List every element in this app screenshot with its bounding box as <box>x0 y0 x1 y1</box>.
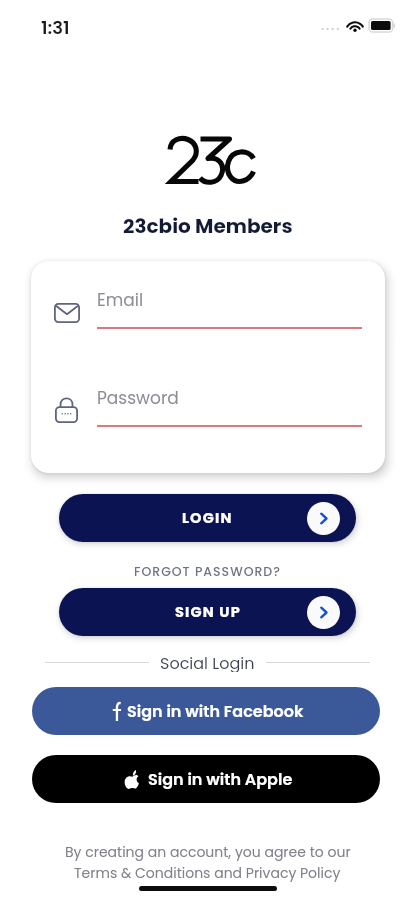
button[interactable]: Sign in with Apple <box>32 755 380 803</box>
staticText: Email <box>97 288 144 312</box>
button[interactable]: Terms & Conditions and Privacy Policy <box>74 863 341 883</box>
button[interactable]: FORGOT PASSWORD? <box>128 560 287 583</box>
staticText: SIGN UP <box>175 602 241 622</box>
staticText: Sign in with Apple <box>148 768 293 790</box>
staticText: By creating an account, you agree to our <box>65 842 351 862</box>
staticText: Sign in with Facebook <box>127 700 304 722</box>
button[interactable]: SIGN UP <box>59 588 356 636</box>
button[interactable]: Password <box>31 389 385 435</box>
button[interactable]: Email <box>31 291 385 337</box>
staticText: FORGOT PASSWORD? <box>134 563 281 580</box>
button[interactable]: Sign in with Facebook <box>32 687 380 735</box>
button[interactable]: LOGIN <box>59 494 356 542</box>
staticText: LOGIN <box>182 508 233 528</box>
staticText: Password <box>97 386 179 410</box>
staticText: 23cbio Members <box>123 212 293 240</box>
staticText: 1:31 <box>41 15 70 40</box>
staticText: Social Login <box>160 652 255 672</box>
